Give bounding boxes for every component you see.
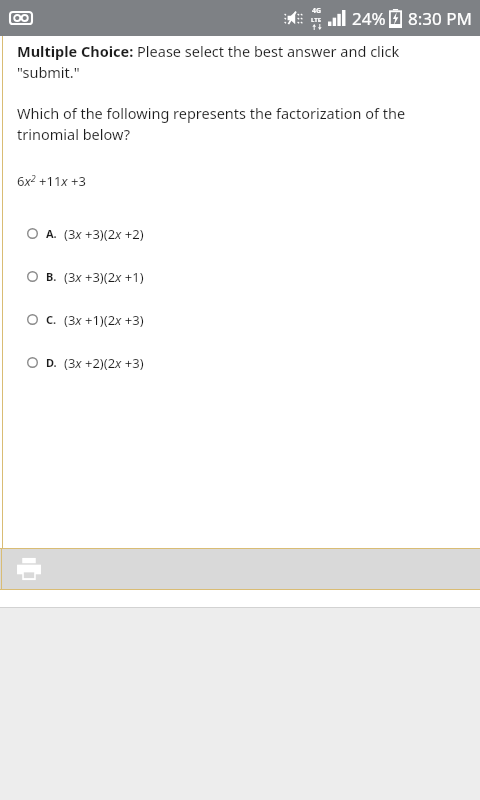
staticText: 24%: [352, 7, 386, 30]
button[interactable]: A.: [17, 212, 460, 255]
other: Voicemail: [10, 10, 32, 26]
staticText: (3x +1)(2x +3): [64, 311, 144, 329]
staticText: (3x +3)(2x +2): [64, 225, 144, 243]
staticText: Which of the following represents the fa…: [17, 103, 460, 145]
button[interactable]: C.: [17, 298, 460, 341]
staticText: 6x2 +11x +3: [17, 172, 86, 190]
staticText: LTE: [311, 16, 322, 24]
button[interactable]: Print: [14, 554, 44, 584]
staticText: D.: [46, 355, 57, 370]
button[interactable]: B.: [17, 255, 460, 298]
staticText: (3x +3)(2x +1): [64, 268, 144, 286]
staticText: (3x +2)(2x +3): [64, 354, 144, 372]
staticText: C.: [46, 312, 57, 327]
staticText: Multiple Choice: Please select the best …: [17, 41, 460, 83]
button[interactable]: D.: [17, 341, 460, 384]
staticText: A.: [46, 226, 57, 241]
staticText: 4G: [312, 6, 322, 16]
staticText: 8:30 PM: [408, 7, 472, 30]
staticText: B.: [46, 269, 57, 284]
